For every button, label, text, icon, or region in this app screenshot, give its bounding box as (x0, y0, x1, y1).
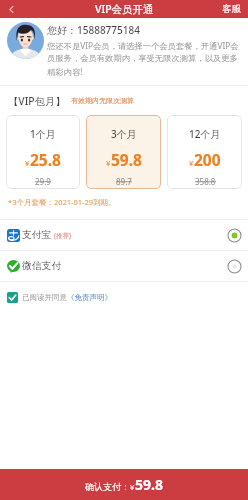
staticText: VIP会员开通 (95, 2, 154, 16)
button[interactable]: 1个月 (6, 115, 80, 189)
button[interactable]: 微信支付 (0, 251, 248, 281)
staticText: ¥ (106, 158, 111, 168)
staticText: ¥ (189, 158, 194, 168)
staticText: 您好：15888775184 (47, 23, 140, 37)
staticText: (推荐) (54, 231, 71, 240)
staticText: 微信支付 (22, 260, 62, 272)
staticText: 59.8 (135, 475, 163, 494)
staticText: 200 (194, 149, 221, 170)
staticText: *3个月套餐：2021-01-29到期。 (8, 197, 116, 207)
button[interactable]: 确认支付： (0, 469, 248, 500)
staticText: 29.9 (35, 176, 51, 187)
staticText: 3个月 (111, 127, 137, 141)
staticText: 12个月 (189, 127, 221, 141)
staticText: 59.8 (111, 149, 142, 170)
button[interactable]: 12个月 (167, 115, 242, 189)
staticText: 确认支付： (85, 481, 130, 492)
staticText: ¥ (25, 158, 30, 168)
button[interactable]: 支付宝 (0, 220, 248, 250)
button[interactable]: 已阅读并同意 (0, 282, 248, 312)
staticText: 您还不是VIP会员，请选择一个会员套餐，开通VIP会员服务，会员有效期内，享受无… (47, 40, 245, 77)
staticText: 25.8 (30, 149, 61, 170)
staticText: 客服 (222, 3, 241, 15)
staticText: 《免责声明》 (67, 293, 112, 302)
button[interactable]: 3个月 (86, 115, 161, 189)
staticText: 已阅读并同意 (22, 293, 67, 302)
staticText: 【VIP包月】 (8, 94, 66, 108)
button[interactable]: 客服 (216, 0, 248, 18)
staticText: 89.7 (116, 176, 132, 187)
staticText: 有效期内无限次测算 (71, 96, 134, 105)
staticText: ¥ (130, 482, 135, 492)
button[interactable]: Back (0, 0, 22, 18)
staticText: 1个月 (30, 127, 56, 141)
staticText: 支付宝 (22, 229, 52, 241)
staticText: 358.8 (195, 176, 216, 187)
